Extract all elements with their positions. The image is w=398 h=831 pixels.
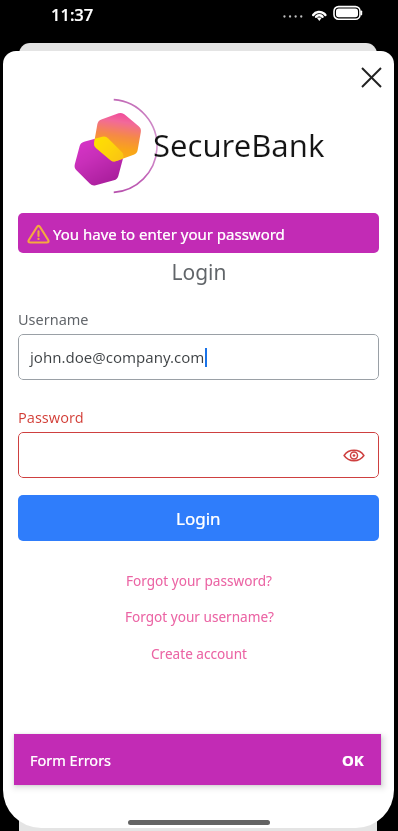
staticText: SecureBank xyxy=(153,124,325,166)
staticText: You have to enter your password xyxy=(53,224,285,244)
staticText: Username xyxy=(18,309,89,329)
staticText: Password xyxy=(18,407,84,427)
staticText: Login xyxy=(0,258,398,287)
button[interactable]: Show password xyxy=(18,432,379,478)
staticText: Form Errors xyxy=(30,750,112,770)
button[interactable]: Forgot your password? xyxy=(118,570,281,591)
staticText: Login xyxy=(176,507,221,530)
staticText: john.doe@company.com xyxy=(30,347,205,367)
staticText: Create account xyxy=(151,644,247,663)
staticText: Forgot your username? xyxy=(125,607,274,626)
button[interactable]: You have to enter your password xyxy=(18,213,379,253)
button[interactable]: Forgot your username? xyxy=(117,606,282,627)
button[interactable]: Form Errors xyxy=(14,734,381,785)
staticText: Forgot your password? xyxy=(126,571,273,590)
button[interactable]: OK xyxy=(334,742,372,778)
button[interactable]: john.doe@company.com xyxy=(18,334,379,380)
staticText: 11:37 xyxy=(51,3,94,25)
button[interactable]: Login xyxy=(18,495,379,541)
button[interactable]: Create account xyxy=(143,643,255,664)
staticText: OK xyxy=(342,750,364,770)
button[interactable]: Close xyxy=(352,58,391,97)
button[interactable]: Show password xyxy=(339,440,369,470)
